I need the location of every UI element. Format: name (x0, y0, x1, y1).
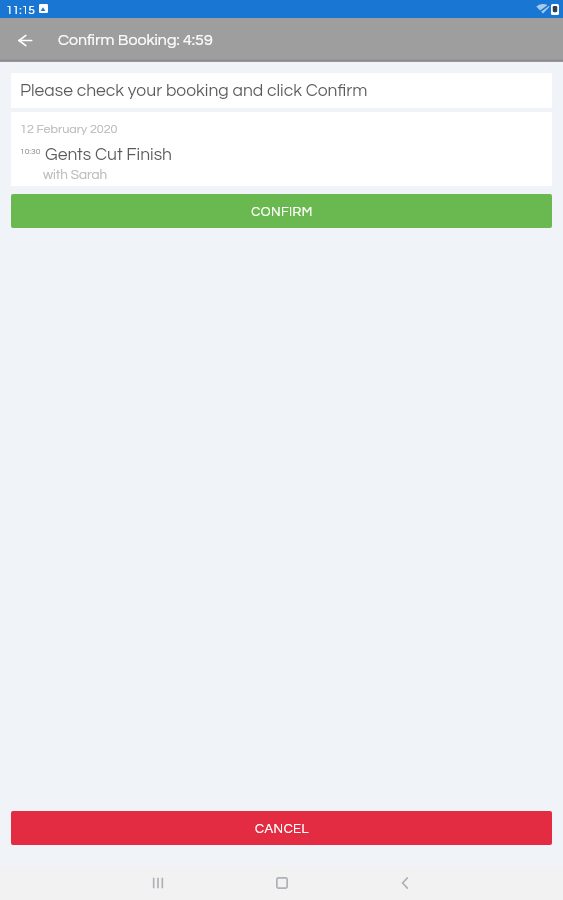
staticText: 12 February 2020 (20, 123, 118, 136)
staticText: Confirm Booking: 4:59 (58, 32, 213, 48)
button[interactable]: CANCEL (11, 811, 552, 845)
staticText: 11:15 (6, 4, 35, 16)
button[interactable]: Recent apps (140, 866, 176, 900)
button[interactable]: Home (264, 866, 300, 900)
staticText: Gents Cut Finish (45, 146, 172, 164)
staticText: CANCEL (255, 822, 309, 835)
staticText: Please check your booking and click Conf… (20, 82, 368, 100)
button[interactable]: CONFIRM (11, 194, 552, 228)
staticText: with Sarah (43, 168, 108, 182)
staticText: 10:30 (20, 147, 41, 156)
button[interactable]: Back (387, 866, 423, 900)
button[interactable]: Back (9, 24, 41, 56)
staticText: CONFIRM (251, 205, 313, 218)
